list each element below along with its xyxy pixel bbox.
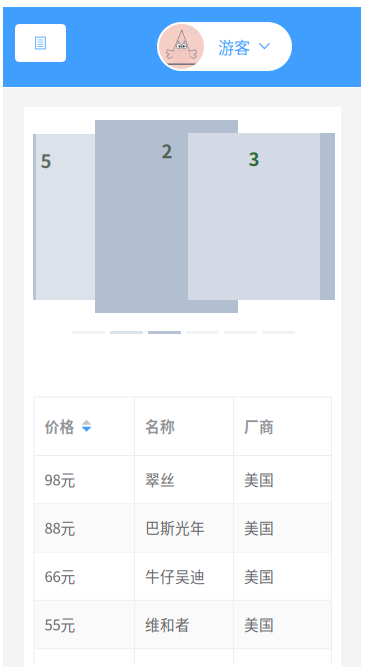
staticText: 美国	[244, 468, 274, 490]
staticText: 名称	[145, 415, 175, 436]
staticText: 维和者	[145, 613, 190, 635]
staticText: 2	[161, 136, 172, 163]
staticText: 美国	[244, 517, 274, 538]
staticText: 厂商	[244, 415, 274, 436]
staticText: 美国	[244, 613, 274, 635]
button[interactable]: 游客	[157, 22, 292, 71]
staticText: 98元	[44, 468, 75, 490]
staticText: 翠丝	[145, 468, 175, 490]
staticText: 牛仔吴迪	[145, 565, 205, 586]
staticText: 3	[248, 144, 259, 171]
staticText: 55元	[44, 613, 75, 635]
staticText: 5	[40, 146, 51, 173]
staticText: 巴斯光年	[145, 517, 205, 538]
staticText: 88元	[44, 517, 75, 538]
staticText: 游客	[218, 35, 250, 58]
button[interactable]: Menu	[15, 24, 66, 62]
staticText: 价格	[44, 415, 74, 436]
staticText: 66元	[44, 565, 75, 586]
staticText: 美国	[244, 565, 274, 586]
